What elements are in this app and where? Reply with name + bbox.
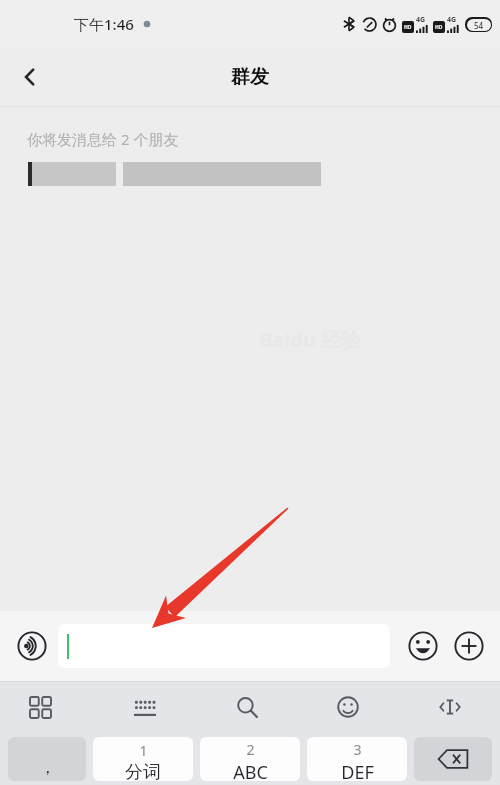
button[interactable]: More [448, 625, 490, 667]
button[interactable]: Back [8, 55, 52, 99]
staticText: 3 [353, 740, 362, 759]
button[interactable]: Emoji [402, 625, 444, 667]
button[interactable]: Emoji [327, 686, 369, 728]
button[interactable]: 1 [93, 737, 193, 781]
button[interactable]: ， [8, 737, 86, 781]
staticText: 54 [474, 20, 484, 31]
button[interactable] [414, 737, 492, 781]
staticText: 分词 [125, 761, 161, 781]
button[interactable]: Voice input [10, 624, 54, 668]
button[interactable]: Edit cursor [429, 686, 471, 728]
button[interactable]: Keyboard [124, 686, 166, 728]
staticText: ABC [233, 760, 268, 781]
staticText: HD [435, 24, 443, 31]
button[interactable]: 2 [200, 737, 300, 781]
staticText: ， [39, 757, 56, 778]
staticText: 你将发消息给 2 个朋友 [27, 129, 179, 149]
button[interactable]: Search [226, 686, 268, 728]
button[interactable]: Apps [19, 686, 61, 728]
staticText: 4G [416, 15, 426, 25]
staticText: 4G [447, 15, 457, 25]
staticText: 1 [139, 741, 148, 760]
staticText: 2 [246, 740, 255, 759]
staticText: HD [404, 24, 412, 31]
staticText: 下午1:46 [74, 14, 134, 34]
button[interactable] [58, 624, 390, 668]
staticText: DEF [341, 760, 374, 781]
staticText: 群发 [231, 65, 269, 89]
button[interactable]: 3 [307, 737, 407, 781]
